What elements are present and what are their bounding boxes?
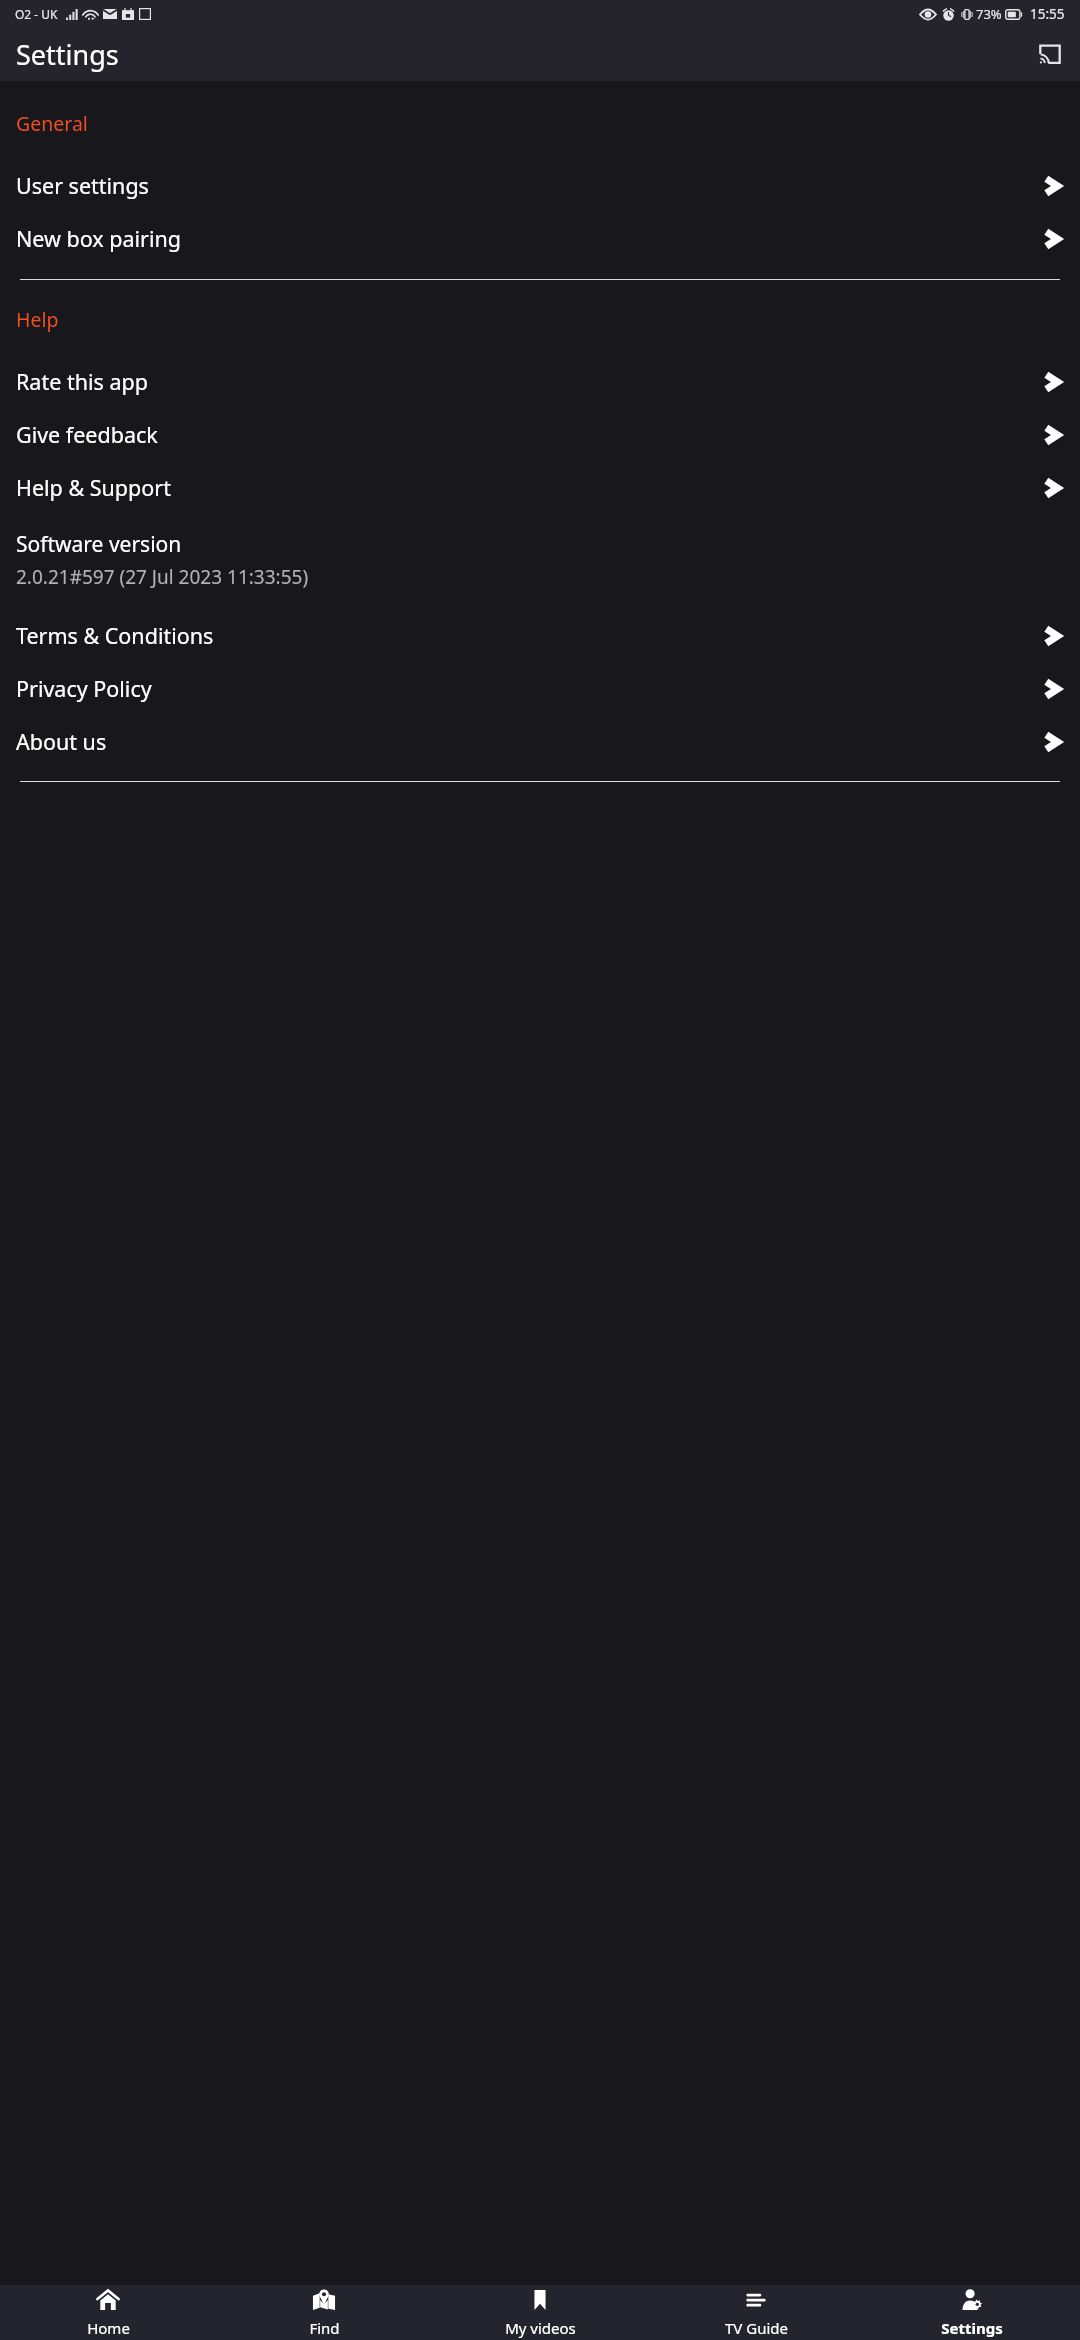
button[interactable]: Find [216,2285,432,2340]
button[interactable]: My videos [432,2285,648,2340]
staticText: Software version [16,530,182,559]
staticText: Home [87,2318,130,2338]
button[interactable]: Terms & Conditions [0,609,1080,662]
staticText: 15:55 [1030,5,1065,23]
button[interactable]: Settings [864,2285,1080,2340]
staticText: Help [16,306,59,333]
button[interactable]: Rate this app [0,355,1080,408]
button[interactable]: Help & Support [0,461,1080,514]
staticText: My videos [505,2318,576,2338]
button[interactable]: Give feedback [0,408,1080,461]
button[interactable]: New box pairing [0,212,1080,265]
staticText: 73% [976,5,1002,23]
staticText: New box pairing [16,224,182,253]
staticText: O2 - UK [15,6,58,22]
staticText: User settings [16,171,149,200]
staticText: About us [16,727,107,756]
staticText: 2.0.21#597 (27 Jul 2023 11:33:55) [16,564,309,590]
staticText: Settings [16,36,119,73]
button[interactable]: Home [0,2285,216,2340]
button[interactable]: User settings [0,159,1080,212]
staticText: TV Guide [725,2318,788,2338]
button[interactable]: Cast [1032,36,1068,72]
button[interactable]: About us [0,715,1080,768]
staticText: Privacy Policy [16,674,152,703]
staticText: Settings [941,2318,1003,2338]
staticText: Find [309,2318,340,2338]
staticText: General [16,110,88,137]
button[interactable]: Privacy Policy [0,662,1080,715]
staticText: Help & Support [16,473,171,502]
staticText: Rate this app [16,367,148,396]
button[interactable]: TV Guide [648,2285,864,2340]
staticText: Give feedback [16,420,158,449]
staticText: Terms & Conditions [16,621,214,650]
